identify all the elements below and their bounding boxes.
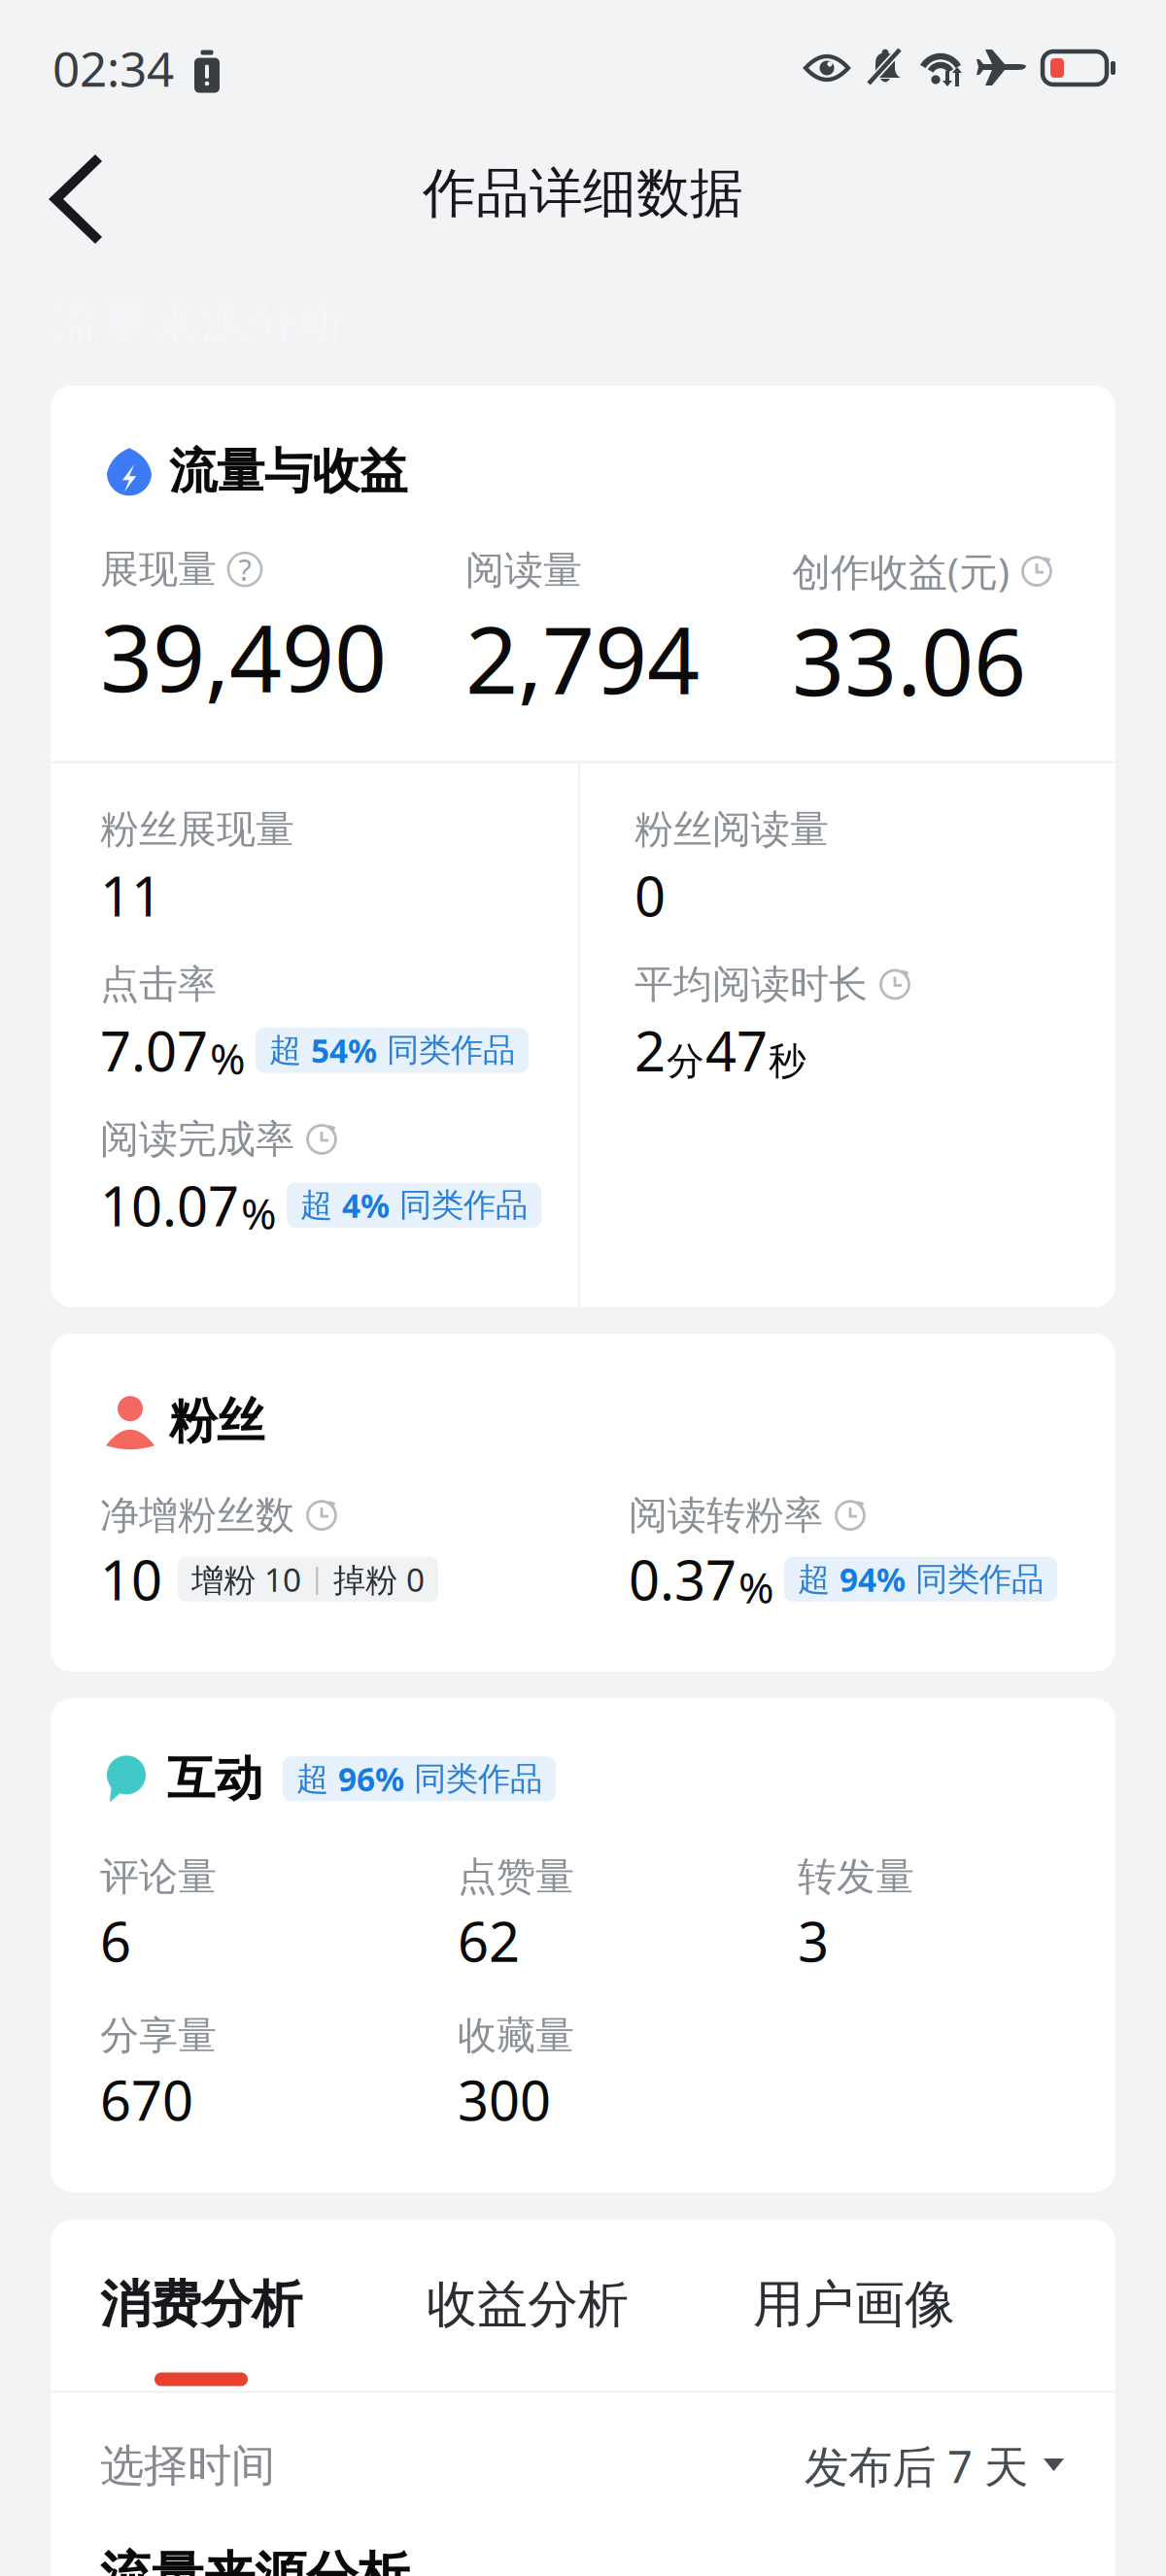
staticText: 收藏量	[458, 2012, 574, 2059]
staticText: 62	[458, 1905, 520, 1977]
staticText: 粉丝展现量	[100, 806, 294, 853]
staticText: 47	[705, 1014, 768, 1086]
staticText: 7.07	[100, 1014, 208, 1086]
staticText: 33.06	[792, 599, 1026, 721]
button[interactable]: 收益分析	[427, 2274, 629, 2336]
staticText: 点击率	[100, 961, 217, 1008]
staticText: 点赞量	[458, 1853, 574, 1901]
staticText: 创作收益(元)	[792, 546, 1010, 597]
staticText: 收益分析	[427, 2274, 629, 2336]
button[interactable]: 用户画像	[753, 2274, 955, 2336]
staticText: 超	[300, 1185, 342, 1225]
staticText: 用户画像	[753, 2274, 955, 2336]
staticText: 超	[798, 1559, 840, 1599]
staticText: 同类作品	[906, 1559, 1044, 1599]
staticText: 净增粉丝数	[100, 1491, 294, 1539]
staticText: 0.37	[629, 1543, 737, 1615]
staticText: 粉丝阅读量	[634, 806, 829, 853]
staticText: 流量与收益	[169, 442, 407, 501]
staticText: 6	[100, 1905, 131, 1977]
staticText: 54%	[311, 1029, 377, 1072]
staticText: 分享量	[100, 2012, 217, 2059]
button[interactable]: 消费分析	[100, 2274, 302, 2386]
staticText: %	[241, 1185, 277, 1241]
staticText: 94%	[840, 1558, 906, 1601]
button[interactable]: Back	[29, 137, 122, 261]
staticText: ?	[239, 550, 251, 589]
staticText: 阅读完成率	[100, 1115, 294, 1163]
staticText: ∣	[301, 1563, 333, 1595]
staticText: 10.07	[100, 1169, 239, 1241]
staticText: 同类作品	[390, 1185, 528, 1225]
staticText: 掉粉 0	[333, 1558, 425, 1601]
staticText: 发布后 7 天	[805, 2437, 1028, 2495]
staticText: 作品详细数据	[423, 161, 743, 226]
staticText: 阅读量	[465, 546, 582, 594]
staticText: 超	[269, 1030, 311, 1070]
staticText: 670	[100, 2063, 193, 2136]
staticText: 粉丝	[169, 1392, 264, 1451]
button[interactable]: 选择时间	[51, 2393, 1115, 2539]
staticText: 流量来源分析	[100, 2545, 409, 2576]
staticText: 2	[634, 1014, 666, 1086]
staticText: 消费分析	[100, 2274, 302, 2336]
staticText: 同类作品	[404, 1759, 542, 1799]
staticText: 选择时间	[100, 2439, 275, 2493]
staticText: 分	[667, 1038, 704, 1084]
staticText: 3	[798, 1905, 829, 1977]
staticText: 评论量	[100, 1853, 217, 1901]
staticText: 展现量	[100, 546, 217, 593]
staticText: 02:34	[52, 36, 174, 100]
staticText: %	[210, 1030, 246, 1086]
staticText: 超	[296, 1759, 338, 1799]
staticText: 10	[100, 1543, 162, 1615]
staticText: 300	[458, 2063, 551, 2136]
staticText: 4%	[342, 1184, 390, 1227]
staticText: 同类作品	[377, 1030, 515, 1070]
staticText: 0	[634, 859, 666, 932]
staticText: 平均阅读时长	[634, 961, 868, 1008]
staticText: 阅读转粉率	[629, 1491, 823, 1539]
staticText: 96%	[338, 1757, 404, 1800]
staticText: 互动	[167, 1749, 262, 1808]
staticText: 秒	[769, 1038, 806, 1084]
staticText: %	[738, 1559, 774, 1615]
staticText: 转发量	[798, 1853, 914, 1901]
staticText: 增粉 10	[191, 1558, 301, 1601]
staticText: 39,490	[100, 595, 387, 717]
staticText: 2,794	[465, 597, 700, 719]
staticText: 11	[100, 859, 162, 932]
